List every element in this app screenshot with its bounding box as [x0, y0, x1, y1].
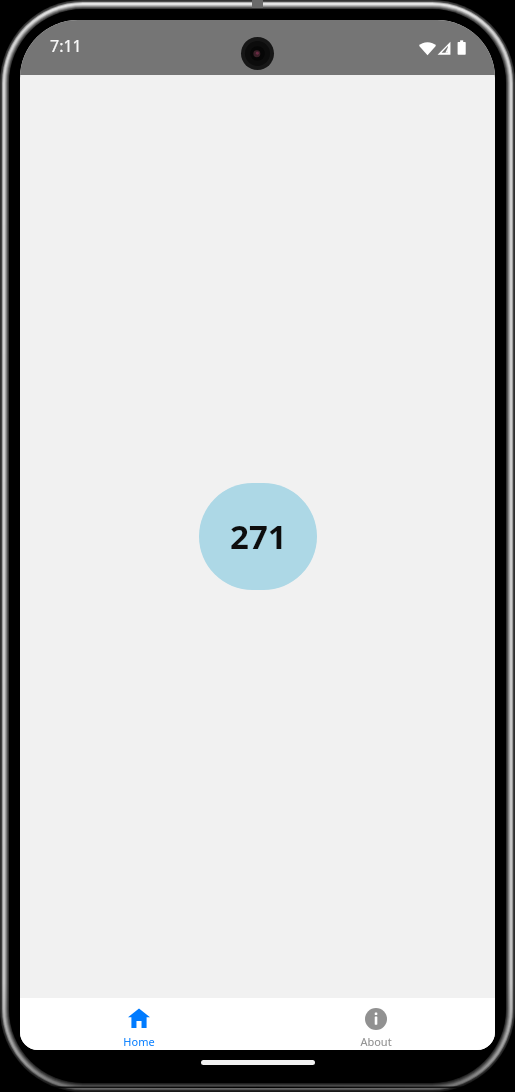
- staticText: 271: [230, 514, 287, 559]
- button[interactable]: About tab: [257, 998, 495, 1050]
- button[interactable]: 271: [199, 483, 317, 590]
- staticText: About: [360, 1034, 392, 1049]
- staticText: 7:11: [50, 35, 82, 57]
- staticText: Home: [123, 1034, 155, 1049]
- button[interactable]: Home tab: [20, 998, 257, 1050]
